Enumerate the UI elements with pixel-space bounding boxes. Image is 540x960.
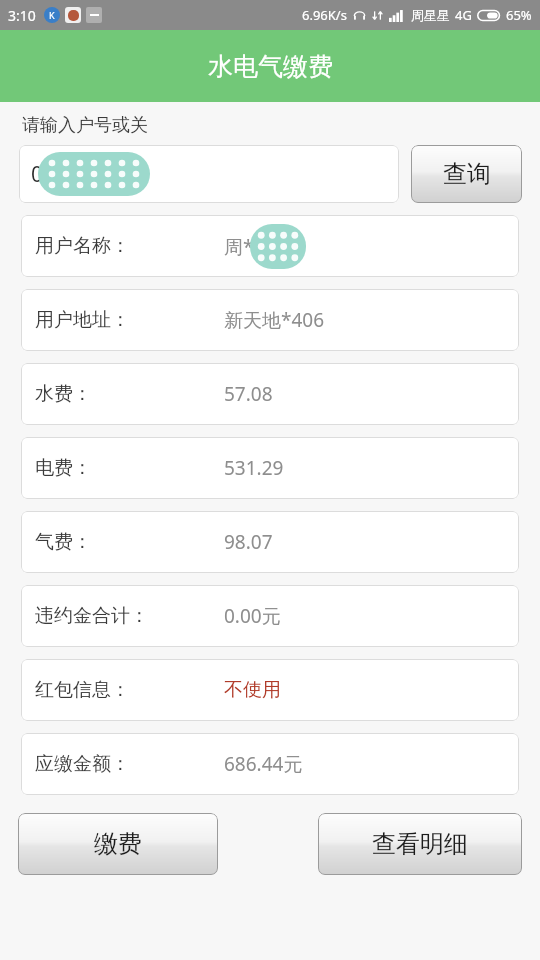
button[interactable]: 用户名称： (21, 215, 519, 277)
staticText: 57.08 (224, 381, 273, 407)
button[interactable]: 查询 (411, 145, 522, 203)
button[interactable]: 用户地址： (21, 289, 519, 351)
button[interactable]: 红包信息： (21, 659, 519, 721)
staticText: 0.00元 (224, 603, 281, 629)
button[interactable]: 电费： (21, 437, 519, 499)
staticText: 周星星 (411, 7, 450, 23)
staticText: 98.07 (224, 529, 273, 555)
staticText: 用户地址： (35, 308, 130, 332)
staticText: 4G (455, 6, 472, 24)
staticText: 531.29 (224, 455, 284, 481)
staticText: 新天地*406 (224, 307, 325, 333)
button[interactable]: 违约金合计： (21, 585, 519, 647)
staticText: 气费： (35, 530, 92, 554)
button[interactable]: 查看明细 (318, 813, 522, 875)
staticText: 用户名称： (35, 234, 130, 258)
staticText: 应缴金额： (35, 752, 130, 776)
staticText: 不使用 (224, 678, 281, 702)
button[interactable]: 0 (19, 145, 399, 203)
button[interactable]: 缴费 (18, 813, 218, 875)
staticText: 65% (506, 6, 532, 24)
staticText: 红包信息： (35, 678, 130, 702)
button[interactable]: 应缴金额： (21, 733, 519, 795)
staticText: 水电气缴费 (208, 51, 333, 82)
staticText: 请输入户号或关 (22, 114, 148, 137)
staticText: K (49, 9, 55, 21)
button[interactable]: 水费： (21, 363, 519, 425)
button[interactable]: 气费： (21, 511, 519, 573)
staticText: 电费： (35, 456, 92, 480)
staticText: 周* (224, 234, 254, 260)
staticText: 686.44元 (224, 751, 303, 777)
staticText: 水费： (35, 382, 92, 406)
staticText: 0 (31, 160, 44, 189)
staticText: 查询 (443, 159, 491, 189)
staticText: 查看明细 (372, 829, 468, 859)
staticText: 缴费 (94, 829, 142, 859)
staticText: 违约金合计： (35, 604, 149, 628)
staticText: 3:10 (8, 6, 36, 25)
staticText: 6.96K/s (302, 6, 347, 24)
